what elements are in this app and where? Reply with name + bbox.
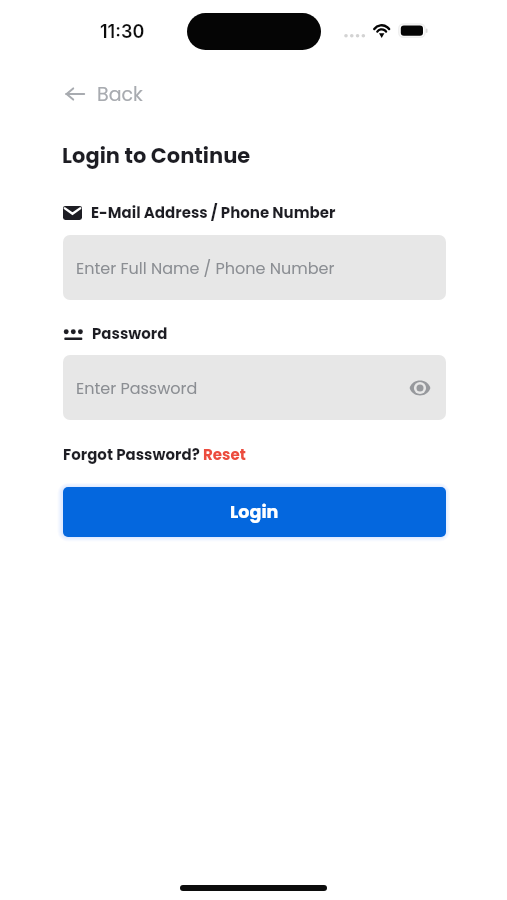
staticText: Password <box>92 323 168 344</box>
staticText: E-Mail Address / Phone Number <box>91 202 336 223</box>
staticText: 11:30 <box>100 21 145 43</box>
button[interactable]: Show password <box>405 373 435 403</box>
button[interactable]: Reset <box>203 444 246 465</box>
button[interactable]: Enter Full Name / Phone Number <box>63 235 446 300</box>
button[interactable]: Back <box>58 78 154 110</box>
staticText: Enter Password <box>76 377 198 399</box>
staticText: Login <box>230 500 279 525</box>
staticText: Forgot Password? <box>63 444 200 465</box>
button[interactable]: Enter Password <box>63 355 446 420</box>
button[interactable]: Login <box>63 487 446 537</box>
staticText: Enter Full Name / Phone Number <box>76 257 335 279</box>
staticText: Back <box>97 81 143 108</box>
staticText: Login to Continue <box>62 141 251 170</box>
